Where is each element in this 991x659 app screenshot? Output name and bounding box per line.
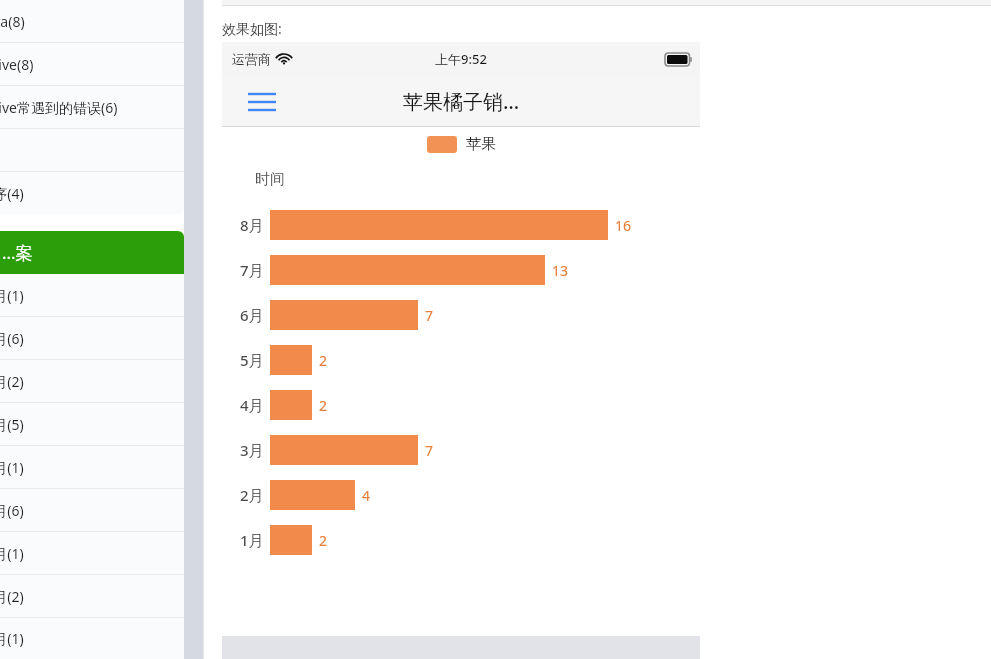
staticText: 7月 xyxy=(240,260,264,280)
button[interactable]: ...月(2) xyxy=(0,575,184,618)
button[interactable]: ...月(5) xyxy=(0,403,184,446)
button[interactable]: 苹果 xyxy=(427,135,496,154)
staticText: ...va(8) xyxy=(0,12,25,31)
staticText: 7 xyxy=(425,306,434,325)
staticText: ...月(1) xyxy=(0,544,24,563)
button[interactable]: ...案 xyxy=(0,231,184,274)
staticText: 2 xyxy=(319,351,328,370)
staticText: ...月(6) xyxy=(0,501,24,520)
button[interactable]: ...tive常遇到的错误(6) xyxy=(0,86,184,129)
staticText: 2月 xyxy=(240,485,264,505)
staticText: ...月(1) xyxy=(0,286,24,305)
staticText: 2 xyxy=(319,531,328,550)
staticText: 16 xyxy=(615,216,632,235)
staticText: ...月(2) xyxy=(0,372,24,391)
staticText: ...月(1) xyxy=(0,458,24,477)
button[interactable]: ...月(6) xyxy=(0,317,184,360)
staticText: ...月(6) xyxy=(0,329,24,348)
staticText: ...序(4) xyxy=(0,184,24,203)
staticText: 6月 xyxy=(240,305,264,325)
staticText: 8月 xyxy=(240,215,264,235)
button[interactable]: Menu xyxy=(244,87,280,117)
button[interactable]: ...月(1) xyxy=(0,446,184,489)
staticText: 7 xyxy=(425,441,434,460)
button[interactable]: ...月(1) xyxy=(0,274,184,317)
staticText: 效果如图: xyxy=(222,19,282,38)
staticText: ...tive常遇到的错误(6) xyxy=(0,98,118,117)
staticText: ...月(5) xyxy=(0,415,24,434)
staticText: 13 xyxy=(552,261,569,280)
staticText: 时间 xyxy=(255,170,285,189)
staticText: ...案 xyxy=(2,241,33,264)
staticText: 4 xyxy=(362,486,371,505)
button[interactable]: ...月(2) xyxy=(0,360,184,403)
staticText: 苹果 xyxy=(466,135,496,154)
staticText: 5月 xyxy=(240,350,264,370)
staticText: 1月 xyxy=(240,530,264,550)
staticText: ...月(1) xyxy=(0,629,24,648)
staticText: 3月 xyxy=(240,440,264,460)
button[interactable]: ...序(4) xyxy=(0,172,184,214)
staticText: 运营商 xyxy=(232,51,271,67)
button[interactable]: ...月(1) xyxy=(0,532,184,575)
staticText: ...月(2) xyxy=(0,587,24,606)
button[interactable]: ...va(8) xyxy=(0,0,184,43)
staticText: ...tive(8) xyxy=(0,55,34,74)
button[interactable]: ...月(6) xyxy=(0,489,184,532)
staticText: 上午9:52 xyxy=(435,50,487,68)
staticText: 苹果橘子销… xyxy=(403,88,520,115)
button[interactable]: ...tive(8) xyxy=(0,43,184,86)
staticText: 2 xyxy=(319,396,328,415)
button[interactable]: ...月(1) xyxy=(0,618,184,659)
staticText: 4月 xyxy=(240,395,264,415)
